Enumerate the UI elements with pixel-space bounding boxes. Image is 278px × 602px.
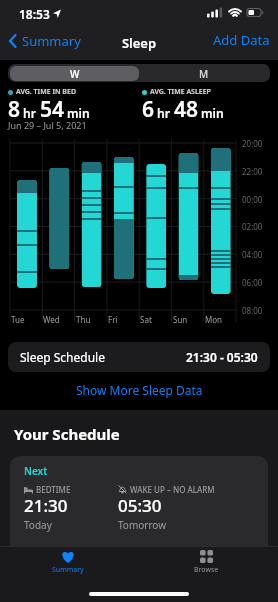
staticText: Mon	[205, 314, 223, 325]
staticText: Sun	[173, 314, 188, 325]
button[interactable]: W	[10, 66, 139, 81]
staticText: 08:00	[242, 305, 263, 316]
staticText: Next	[24, 464, 48, 478]
button[interactable]: Summary	[8, 32, 81, 50]
staticText: Browse	[194, 565, 219, 575]
button[interactable]: Show More Sleep Data	[0, 382, 278, 398]
staticText: hr	[23, 105, 36, 121]
button[interactable]: Browse	[178, 550, 234, 580]
staticText: Sat	[140, 314, 152, 325]
staticText: Summary	[52, 565, 84, 575]
staticText: 6	[142, 95, 155, 124]
staticText: Sleep	[0, 34, 278, 52]
staticText: Summary	[22, 32, 81, 50]
staticText: 04:00	[242, 249, 263, 260]
staticText: 21:30 - 05:30	[186, 349, 258, 365]
button[interactable]: Add Data	[210, 29, 270, 51]
button[interactable]: Next	[10, 456, 268, 556]
staticText: 00:00	[242, 194, 263, 205]
button[interactable]: Sleep Schedule	[8, 342, 270, 372]
staticText: 22:00	[242, 166, 263, 177]
staticText: AVG. TIME ASLEEP	[150, 87, 211, 97]
staticText: 48	[174, 95, 199, 124]
staticText: Show More Sleep Data	[76, 382, 203, 398]
staticText: Your Schedule	[14, 424, 120, 444]
staticText: 21:30	[24, 494, 68, 517]
staticText: min	[67, 105, 90, 121]
staticText: min	[201, 105, 224, 121]
staticText: 54	[40, 95, 65, 124]
staticText: 18:53	[19, 6, 50, 22]
staticText: Wed	[43, 314, 60, 325]
staticText: Today	[24, 518, 52, 532]
staticText: Fri	[108, 314, 118, 325]
staticText: Add Data	[213, 31, 270, 49]
staticText: WAKE UP – NO ALARM	[130, 484, 215, 495]
staticText: hr	[157, 105, 170, 121]
staticText: Sleep Schedule	[20, 349, 105, 365]
staticText: 02:00	[242, 221, 263, 232]
staticText: Tomorrow	[118, 518, 167, 532]
staticText: 06:00	[242, 277, 263, 288]
staticText: AVG. TIME IN BED	[16, 87, 77, 97]
staticText: Tue	[11, 314, 25, 325]
button[interactable]: M	[139, 66, 268, 81]
staticText: Thu	[76, 314, 91, 325]
staticText: 8	[8, 95, 21, 124]
staticText: 20:00	[242, 138, 263, 149]
staticText: 05:30	[118, 494, 162, 517]
staticText: BEDTIME	[36, 484, 71, 495]
staticText: Jun 29 – Jul 5, 2021	[8, 119, 87, 131]
button[interactable]: Summary	[40, 550, 96, 580]
staticText: W	[70, 67, 80, 81]
staticText: M	[199, 67, 209, 81]
